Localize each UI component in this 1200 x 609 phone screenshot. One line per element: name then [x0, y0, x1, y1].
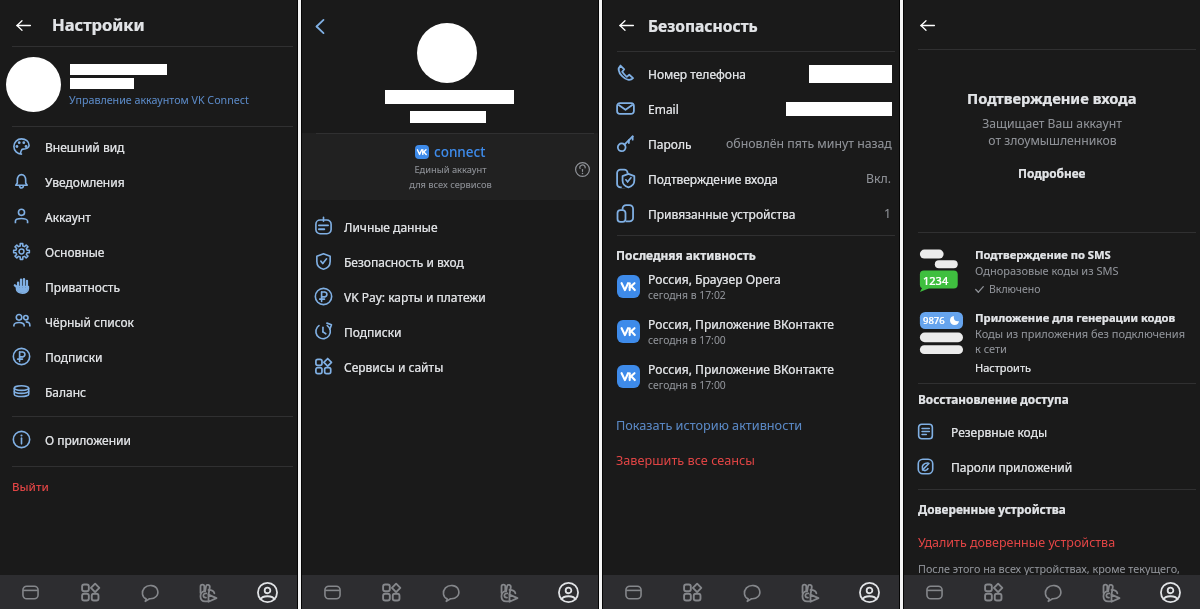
staticText: Подписки	[45, 349, 103, 365]
button[interactable]: Подтверждение входа	[603, 161, 899, 196]
staticText: Безопасность и вход	[344, 254, 464, 270]
button[interactable]: Back	[910, 8, 945, 43]
button[interactable]: Clips	[179, 575, 238, 609]
button[interactable]: Подписки	[302, 314, 598, 349]
staticText: Пароль	[648, 136, 692, 152]
button[interactable]: Россия, Браузер Opera	[603, 264, 899, 308]
button[interactable]: Messages	[120, 575, 179, 609]
button[interactable]: Profile	[1141, 575, 1200, 609]
staticText: Подписки	[344, 324, 402, 340]
staticText: Email	[648, 101, 679, 117]
button[interactable]: VK Pay: карты и платежи	[302, 279, 598, 314]
button[interactable]: Clips	[480, 575, 539, 609]
staticText: 1	[884, 205, 892, 222]
button[interactable]: Показать историю активности	[603, 412, 899, 436]
button[interactable]: Пароль	[603, 126, 899, 161]
staticText: Подтверждение по SMS	[975, 247, 1111, 262]
button[interactable]: Настроить	[975, 360, 1031, 375]
button[interactable]: Сервисы и сайты	[302, 349, 598, 384]
button[interactable]: Безопасность и вход	[302, 244, 598, 279]
button[interactable]: Help	[571, 158, 593, 180]
button[interactable]: Баланс	[0, 374, 297, 409]
staticText: О приложении	[45, 432, 131, 448]
staticText: Привязанные устройства	[648, 206, 796, 222]
button[interactable]: News	[0, 575, 60, 609]
button[interactable]: Россия, Приложение ВКонтакте	[603, 354, 899, 398]
staticText: Уведомления	[45, 174, 125, 190]
button[interactable]: News	[603, 575, 663, 609]
staticText: Пароли приложений	[951, 459, 1073, 475]
button[interactable]: Приватность	[0, 269, 297, 304]
button[interactable]: Завершить все сеансы	[603, 447, 899, 471]
staticText: Удалить доверенные устройства	[918, 534, 1116, 551]
staticText: Последняя активность	[616, 247, 756, 263]
button[interactable]: Back	[6, 8, 41, 43]
staticText: Восстановление доступа	[918, 391, 1069, 407]
button[interactable]: Внешний вид	[0, 129, 297, 164]
staticText: от злоумышленников	[988, 132, 1117, 149]
button[interactable]: Пароли приложений	[904, 449, 1200, 484]
button[interactable]: Резервные коды	[904, 414, 1200, 449]
button[interactable]: Services	[362, 575, 421, 609]
staticText: VK Pay: карты и платежи	[344, 289, 486, 305]
staticText: Россия, Приложение ВКонтакте	[648, 361, 834, 377]
button[interactable]: Основные	[0, 234, 297, 269]
staticText: к сети	[975, 341, 1007, 356]
button[interactable]: Messages	[722, 575, 781, 609]
staticText: Россия, Браузер Opera	[648, 271, 781, 287]
button[interactable]: Services	[964, 575, 1023, 609]
staticText: Настроить	[975, 360, 1031, 375]
staticText: обновлён пять минут назад	[726, 135, 892, 152]
staticText: Резервные коды	[951, 424, 1048, 440]
staticText: Включено	[989, 282, 1041, 296]
button[interactable]: Уведомления	[0, 164, 297, 199]
button[interactable]: Подписки	[0, 339, 297, 374]
staticText: Внешний вид	[45, 139, 125, 155]
staticText: Подтверждение входа	[967, 88, 1137, 108]
staticText: 1234	[923, 273, 949, 288]
staticText: После этого на всех устройствах, кроме т…	[918, 561, 1180, 576]
staticText: Вкл.	[866, 170, 892, 187]
button[interactable]: Services	[60, 575, 120, 609]
staticText: Доверенные устройства	[918, 501, 1066, 517]
staticText: connect	[434, 143, 486, 161]
button[interactable]: Services	[663, 575, 722, 609]
button[interactable]: Messages	[1023, 575, 1082, 609]
staticText: Безопасность	[648, 15, 758, 36]
staticText: Номер телефона	[648, 66, 747, 82]
button[interactable]: Привязанные устройства	[603, 196, 899, 231]
staticText: сегодня в 17:00	[648, 333, 726, 347]
button[interactable]: Удалить доверенные устройства	[904, 531, 1200, 553]
staticText: Россия, Приложение ВКонтакте	[648, 316, 834, 332]
button[interactable]: Россия, Приложение ВКонтакте	[603, 309, 899, 353]
button[interactable]: Номер телефона	[603, 56, 899, 91]
button[interactable]: News	[302, 575, 362, 609]
button[interactable]: Подробнее	[1012, 162, 1092, 184]
button[interactable]: О приложении	[0, 422, 297, 457]
button[interactable]: Чёрный список	[0, 304, 297, 339]
button[interactable]: Clips	[1082, 575, 1141, 609]
button[interactable]: Messages	[421, 575, 480, 609]
button[interactable]: Profile	[840, 575, 899, 609]
button[interactable]: Аккаунт	[0, 199, 297, 234]
button[interactable]: Email	[603, 91, 899, 126]
staticText: Выйти	[12, 479, 49, 495]
staticText: Одноразовые коды из SMS	[975, 263, 1119, 278]
button[interactable]: Back	[609, 8, 644, 43]
button[interactable]: Выйти	[0, 474, 297, 500]
staticText: Подтверждение входа	[648, 171, 778, 187]
staticText: Приложение для генерации кодов	[975, 310, 1176, 325]
button[interactable]: Profile	[539, 575, 598, 609]
button[interactable]: Profile	[238, 575, 297, 609]
staticText: Баланс	[45, 384, 87, 400]
button[interactable]: Личные данные	[302, 209, 598, 244]
staticText: Коды из приложения без подключения	[975, 326, 1186, 341]
button[interactable]: Back	[304, 10, 337, 43]
staticText: сегодня в 17:00	[648, 378, 726, 392]
button[interactable]: Clips	[781, 575, 840, 609]
staticText: Защищает Ваш аккаунт	[982, 115, 1122, 132]
button[interactable]: News	[904, 575, 964, 609]
staticText: Завершить все сеансы	[616, 451, 755, 468]
staticText: Приватность	[45, 279, 120, 295]
staticText: Аккаунт	[45, 209, 91, 225]
